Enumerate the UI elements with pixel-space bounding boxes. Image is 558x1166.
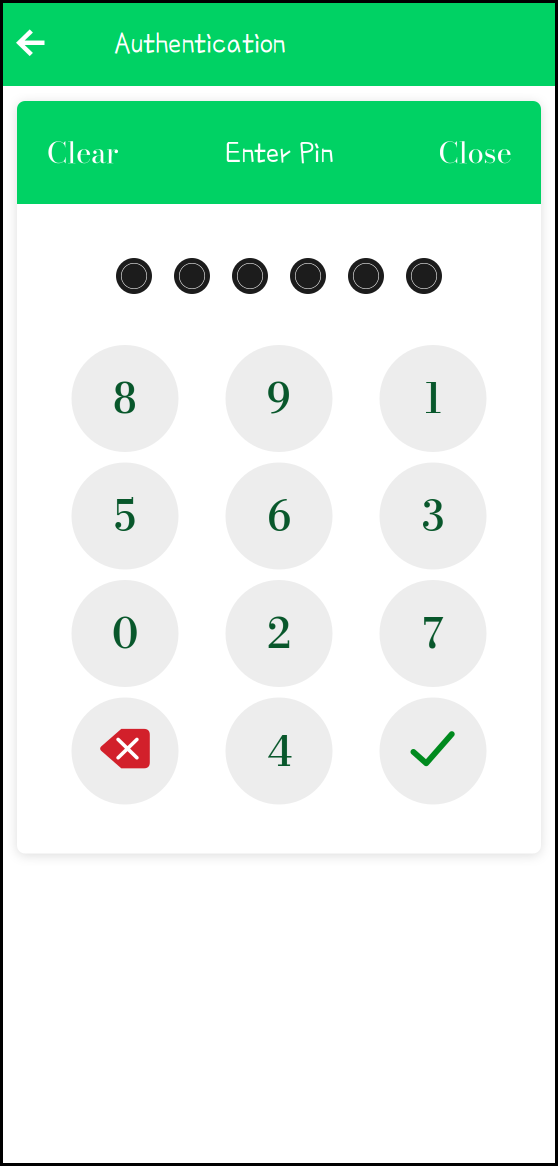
staticText: 8	[113, 367, 137, 430]
staticText: Clear	[47, 130, 119, 175]
staticText: Close	[438, 130, 511, 175]
staticText: 0	[112, 602, 138, 665]
staticText: 3	[422, 484, 444, 547]
button[interactable]: 8	[71, 345, 178, 452]
staticText: 7	[422, 602, 443, 665]
staticText: Authentication	[114, 27, 285, 59]
button[interactable]: Back	[0, 0, 62, 85]
button[interactable]: 0	[71, 580, 178, 687]
button[interactable]: Delete	[71, 697, 178, 804]
button[interactable]: 5	[71, 462, 178, 569]
button[interactable]: 7	[379, 580, 486, 687]
staticText: 2	[267, 602, 291, 665]
staticText: 6	[267, 484, 291, 547]
staticText: Enter Pin	[225, 136, 333, 168]
button[interactable]: 2	[225, 580, 332, 687]
staticText: 4	[266, 719, 291, 782]
staticText: 5	[114, 484, 135, 547]
button[interactable]: 4	[225, 697, 332, 804]
button[interactable]: Close	[409, 101, 541, 204]
button[interactable]: 6	[225, 462, 332, 569]
button[interactable]: 3	[379, 462, 486, 569]
staticText: 1	[423, 367, 442, 430]
button[interactable]: 9	[225, 345, 332, 452]
button[interactable]: Confirm	[379, 697, 486, 804]
button[interactable]: Clear	[17, 101, 149, 204]
staticText: 9	[267, 367, 291, 430]
button[interactable]: 1	[379, 345, 486, 452]
